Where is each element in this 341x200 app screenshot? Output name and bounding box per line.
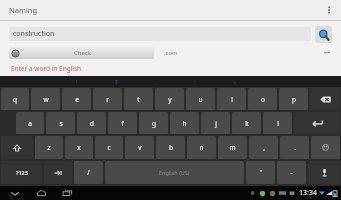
staticText: z: [47, 143, 51, 152]
button[interactable]: y: [155, 88, 184, 110]
button[interactable]: l: [263, 112, 292, 134]
button[interactable]: Shift: [1, 136, 33, 159]
staticText: -: [290, 168, 293, 177]
button[interactable]: Check: [9, 47, 154, 59]
button[interactable]: Tab: [44, 161, 72, 184]
staticText: ?: [115, 78, 118, 85]
button[interactable]: Choose domain: [322, 48, 332, 58]
staticText: k: [245, 119, 249, 128]
staticText: Check: [74, 49, 91, 57]
staticText: o: [261, 95, 265, 104]
button[interactable]: w: [31, 88, 60, 110]
button[interactable]: -: [277, 161, 306, 184]
staticText: v: [138, 143, 142, 152]
button[interactable]: j: [201, 112, 230, 134]
button[interactable]: .: [280, 136, 309, 159]
staticText: b: [169, 143, 173, 152]
button[interactable]: q: [1, 88, 29, 110]
button[interactable]: Symbols: [1, 161, 42, 184]
staticText: /: [87, 168, 90, 177]
staticText: s: [59, 119, 63, 128]
button[interactable]: More options: [320, 1, 338, 19]
button[interactable]: u: [186, 88, 215, 110]
staticText: a: [28, 119, 32, 128]
staticText: h: [182, 119, 187, 128]
button[interactable]: v: [125, 136, 154, 159]
staticText: :: [194, 78, 196, 85]
staticText: ,: [155, 78, 157, 85]
staticText: .: [294, 143, 296, 152]
button[interactable]: z: [35, 136, 63, 159]
button[interactable]: construction: [9, 27, 311, 41]
staticText: n: [199, 143, 204, 152]
button[interactable]: p: [279, 88, 308, 110]
staticText: u: [198, 95, 203, 104]
staticText: l: [277, 119, 279, 128]
button[interactable]: Search: [315, 26, 332, 43]
button[interactable]: ,: [249, 136, 278, 159]
button[interactable]: Recent apps: [60, 186, 74, 200]
staticText: 13:34: [299, 188, 317, 198]
staticText: x: [77, 143, 81, 152]
staticText: r: [106, 95, 109, 104]
button[interactable]: f: [108, 112, 137, 134]
staticText: ?123: [16, 169, 28, 176]
staticText: d: [90, 119, 94, 128]
staticText: w: [43, 95, 49, 104]
staticText: ': [260, 168, 262, 177]
button[interactable]: d: [77, 112, 106, 134]
staticText: ¬: [233, 78, 237, 85]
button[interactable]: k: [232, 112, 261, 134]
button[interactable]: /: [74, 161, 103, 184]
button[interactable]: Hide keyboard: [8, 186, 22, 200]
button[interactable]: s: [46, 112, 75, 134]
button[interactable]: i: [217, 88, 246, 110]
staticText: c: [107, 143, 111, 152]
button[interactable]: c: [95, 136, 123, 159]
staticText: Enter a word in English: [11, 64, 82, 73]
staticText: !: [76, 78, 78, 85]
button[interactable]: Enter: [294, 112, 340, 134]
staticText: p: [292, 95, 296, 104]
button[interactable]: g: [139, 112, 168, 134]
button[interactable]: Emoji: [311, 136, 340, 159]
button[interactable]: e: [62, 88, 91, 110]
staticText: e: [75, 95, 79, 104]
staticText: i: [231, 95, 233, 104]
button[interactable]: a: [16, 112, 44, 134]
staticText: construction: [13, 29, 55, 39]
button[interactable]: o: [248, 88, 277, 110]
button[interactable]: x: [65, 136, 93, 159]
staticText: ,: [263, 143, 265, 152]
staticText: j: [215, 119, 217, 128]
staticText: m: [229, 143, 236, 152]
button[interactable]: Backspace: [310, 88, 340, 110]
staticText: y: [168, 95, 172, 104]
staticText: f: [121, 119, 124, 128]
button[interactable]: Home: [34, 186, 48, 200]
button[interactable]: Space: [105, 161, 244, 184]
staticText: t: [137, 95, 140, 104]
staticText: .com: [164, 49, 178, 57]
button[interactable]: h: [170, 112, 199, 134]
button[interactable]: ': [246, 161, 275, 184]
staticText: g: [152, 119, 156, 128]
button[interactable]: m: [218, 136, 247, 159]
button[interactable]: n: [187, 136, 216, 159]
button[interactable]: t: [124, 88, 153, 110]
button[interactable]: r: [93, 88, 122, 110]
button[interactable]: Voice input: [308, 161, 340, 184]
staticText: q: [13, 95, 17, 104]
staticText: Naming: [9, 5, 38, 15]
staticText: English (US): [159, 169, 190, 176]
button[interactable]: b: [156, 136, 185, 159]
